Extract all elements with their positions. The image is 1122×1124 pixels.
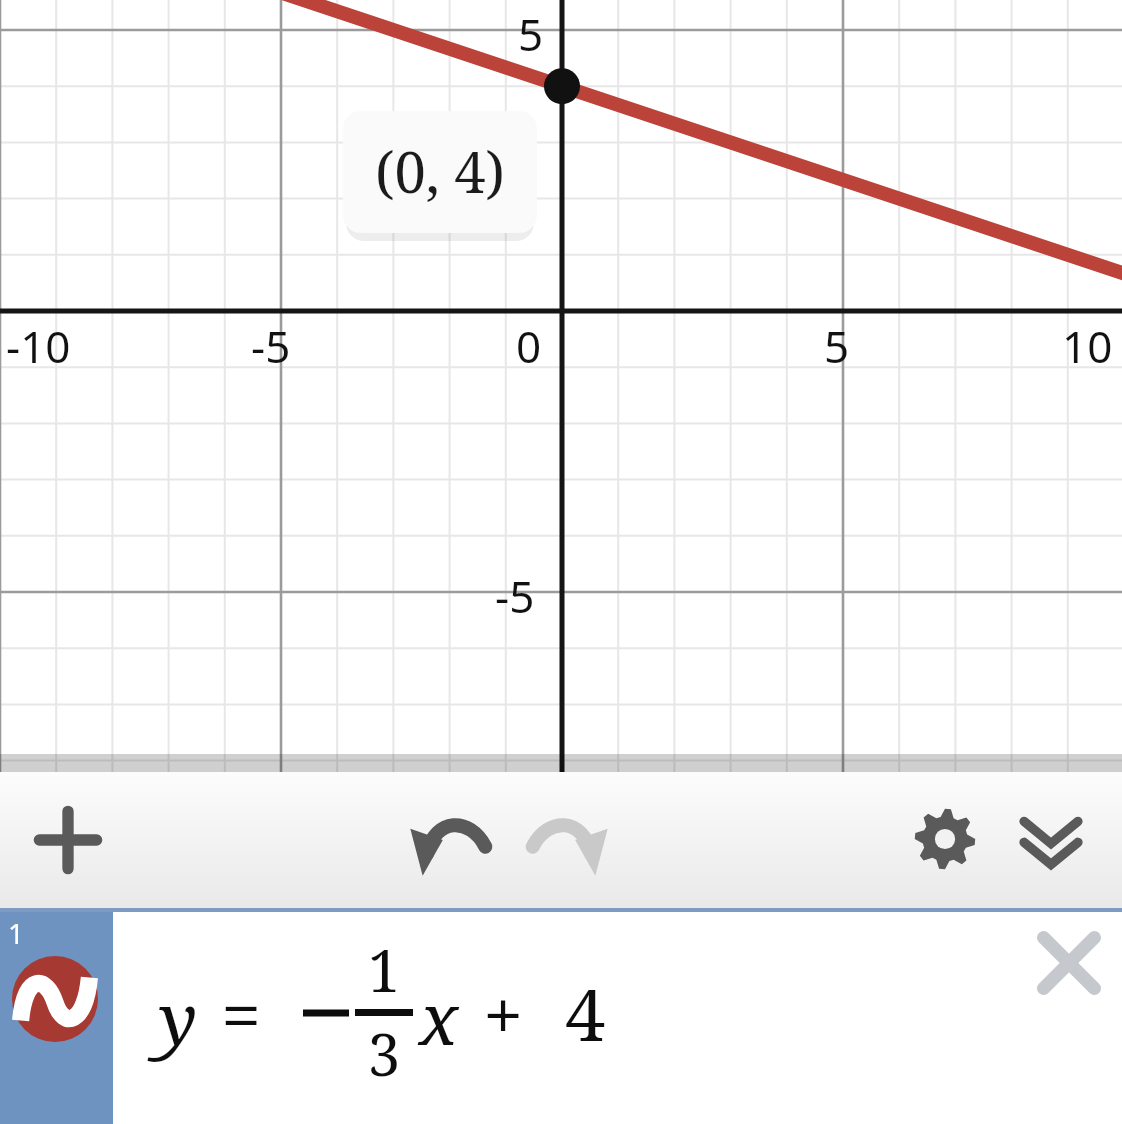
- staticText: -5: [251, 316, 291, 376]
- button[interactable]: Settings: [890, 784, 1000, 894]
- staticText: 1: [8, 914, 25, 952]
- staticText: 5: [518, 4, 544, 64]
- staticText: 1: [361, 930, 407, 1009]
- staticText: 3: [361, 1014, 407, 1093]
- staticText: -10: [6, 316, 71, 376]
- staticText: x: [419, 968, 459, 1066]
- other: Toggle graph: [12, 956, 98, 1042]
- staticText: 0: [516, 316, 542, 376]
- staticText: y: [159, 968, 198, 1066]
- staticText: 5: [824, 316, 850, 376]
- button[interactable]: Add expression: [14, 786, 122, 894]
- staticText: +: [483, 964, 524, 1062]
- button[interactable]: Redo: [508, 784, 620, 896]
- button[interactable]: Delete expression: [1026, 920, 1112, 1006]
- staticText: 10: [1062, 316, 1113, 376]
- staticText: (0, 4): [375, 133, 505, 209]
- staticText: -5: [495, 566, 535, 626]
- staticText: =: [221, 964, 262, 1062]
- button[interactable]: 1: [0, 912, 1122, 1124]
- staticText: 4: [565, 964, 606, 1062]
- button[interactable]: Collapse: [996, 784, 1106, 894]
- button[interactable]: Undo: [398, 784, 510, 896]
